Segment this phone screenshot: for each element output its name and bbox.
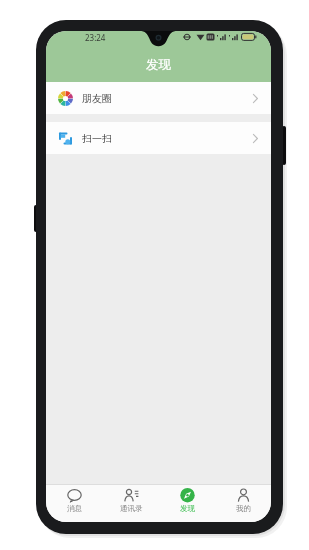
button[interactable]: 朋友圈 <box>46 82 271 114</box>
button[interactable]: 通讯录 <box>103 484 159 522</box>
button[interactable]: 我的 <box>215 484 271 522</box>
staticText: 消息 <box>67 504 82 513</box>
staticText: 我的 <box>236 504 251 513</box>
staticText: 扫一扫 <box>82 132 112 145</box>
button[interactable]: 扫一扫 <box>46 122 271 154</box>
button[interactable]: 消息 <box>46 484 103 522</box>
staticText: 通讯录 <box>120 504 143 513</box>
staticText: 朋友圈 <box>82 92 112 105</box>
staticText: 发现 <box>146 57 171 73</box>
button[interactable]: 发现 <box>159 484 215 522</box>
staticText: 23:24 <box>85 32 106 43</box>
staticText: 发现 <box>180 504 195 513</box>
